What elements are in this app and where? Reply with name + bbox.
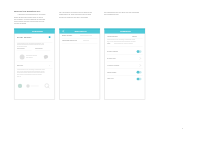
staticText: SELECT BRANCH [70,30,91,32]
staticText: Select a branch here [80,35,97,37]
staticText: et dolore magna aliqua. Ut enim ad minim… [17,72,53,74]
button[interactable]: Profile [16,82,23,87]
button[interactable]: Setting row 3 [104,62,145,69]
staticText: Line number [35,48,50,50]
staticText: ENTER DETAILS [28,30,47,32]
staticText: the changes. If you are editing an inter… [14,18,46,20]
staticText: All status changes [107,64,133,66]
staticText: elit, sed do eiusmod tempor incididunt u… [107,41,143,43]
staticText: • new lines and hierarchies in real time [17,13,51,15]
button[interactable]: Setting row 4 [104,69,145,76]
staticText: nisi ut [17,76,53,78]
button[interactable]: Search [45,82,50,87]
staticText: et dolore magna [17,46,53,48]
staticText: notifications for how the line the line … [59,13,101,15]
staticText: NOTIFICATIONS [116,30,135,32]
staticText: on the attach the link circuit page you … [14,20,46,22]
staticText: Weekly digest [107,71,133,73]
staticText: Connected branch [26,55,44,57]
staticText: Lorem ipsum dolor sit amet, consectetur … [17,69,53,71]
staticText: Lorem ipsum dolor sit amet consectetur a… [17,43,53,45]
button[interactable]: Cancel [131,34,143,39]
staticText: when delaying and press enter or tap to [14,16,46,18]
staticText: Circuit name [17,48,31,50]
staticText: 6 [182,127,187,129]
staticText: Select one [83,40,97,42]
staticText: Cancel [132,35,142,37]
staticText: Branch number [62,35,80,37]
staticText: quis nostrud exercitation ullamco labori… [17,74,53,76]
button[interactable]: Setting row 1 [104,48,145,55]
staticText: Enter Details [17,35,37,38]
button[interactable]: Setting row 2 [104,55,145,62]
staticText: circuits for now that for heat. Shift fl… [59,16,101,18]
staticText: Lorem ipsum dolor sit amet, consectetur … [107,39,143,41]
staticText: the notifications bar [104,13,146,15]
button[interactable]: Setting row 5 [104,76,145,83]
staticText: Tap the branch list and the circuit page… [59,11,101,13]
staticText: Connected branch line [62,40,84,42]
staticText: Display the updated circ [14,10,48,13]
staticText: Present updates [107,50,133,52]
staticText: Set notifications for you when set the c… [104,11,146,13]
staticText: DETAILS [17,64,29,66]
staticText: Note: [107,43,114,45]
button[interactable]: App bar [14,29,55,34]
staticText: elit sed do eiusmod tempor incididunt ut… [17,44,53,46]
staticText: Auto sync [107,77,133,79]
staticText: alerts appear on the lock screen [114,43,141,45]
staticText: Line status [26,57,44,59]
staticText: Process alert [107,57,133,59]
staticText: elit, sed do eiusmod tempor incididunt u… [17,71,53,73]
button[interactable]: Add item [46,34,52,40]
staticText: not see available [14,22,46,24]
staticText: Notifications [107,35,123,37]
